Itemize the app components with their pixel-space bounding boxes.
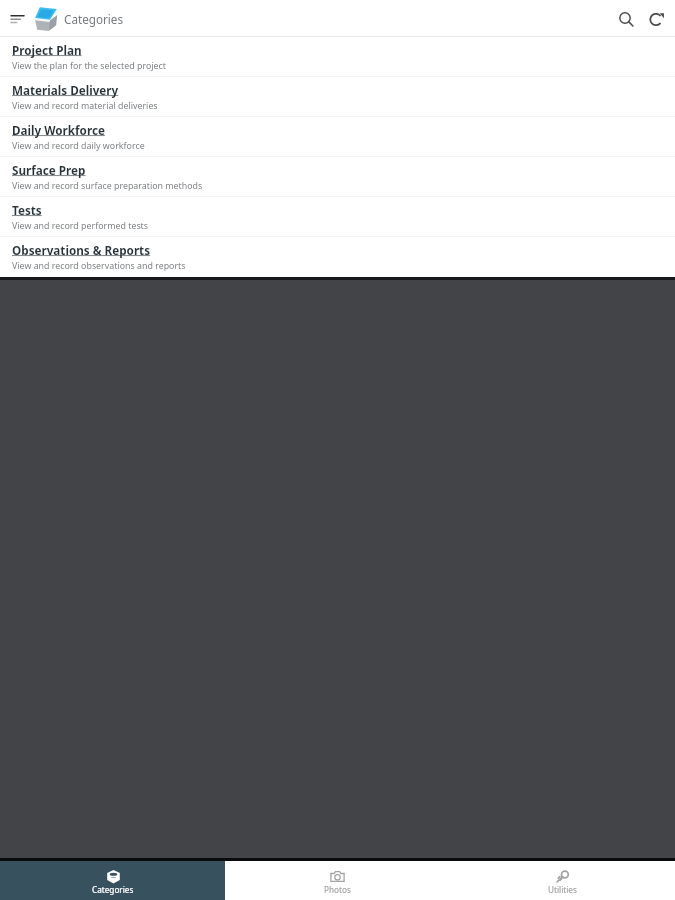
button[interactable]: Categories: [0, 861, 225, 900]
button[interactable]: Observations & Reports: [0, 237, 675, 277]
staticText: Utilities: [548, 884, 577, 895]
staticText: View and record daily workforce: [12, 140, 145, 152]
staticText: View the plan for the selected project: [12, 60, 166, 72]
button[interactable]: Photos: [225, 861, 450, 900]
staticText: View and record observations and reports: [12, 260, 186, 272]
button[interactable]: Project Plan: [0, 37, 675, 77]
button[interactable]: Refresh: [642, 5, 670, 33]
button[interactable]: Materials Delivery: [0, 77, 675, 117]
staticText: Daily Workforce: [12, 122, 105, 138]
button[interactable]: Surface Prep: [0, 157, 675, 197]
staticText: View and record performed tests: [12, 220, 149, 232]
staticText: Photos: [324, 884, 351, 895]
button[interactable]: Search: [612, 5, 640, 33]
staticText: Surface Prep: [12, 162, 86, 178]
staticText: Categories: [92, 884, 134, 895]
staticText: View and record material deliveries: [12, 100, 158, 112]
staticText: View and record surface preparation meth…: [12, 180, 203, 192]
staticText: Observations & Reports: [12, 242, 151, 258]
button[interactable]: Utilities: [450, 861, 675, 900]
staticText: Tests: [12, 202, 42, 218]
staticText: Project Plan: [12, 42, 82, 58]
staticText: Materials Delivery: [12, 82, 119, 98]
staticText: Categories: [64, 11, 124, 27]
button[interactable]: Daily Workforce: [0, 117, 675, 157]
button[interactable]: Menu: [4, 6, 30, 32]
button[interactable]: Tests: [0, 197, 675, 237]
